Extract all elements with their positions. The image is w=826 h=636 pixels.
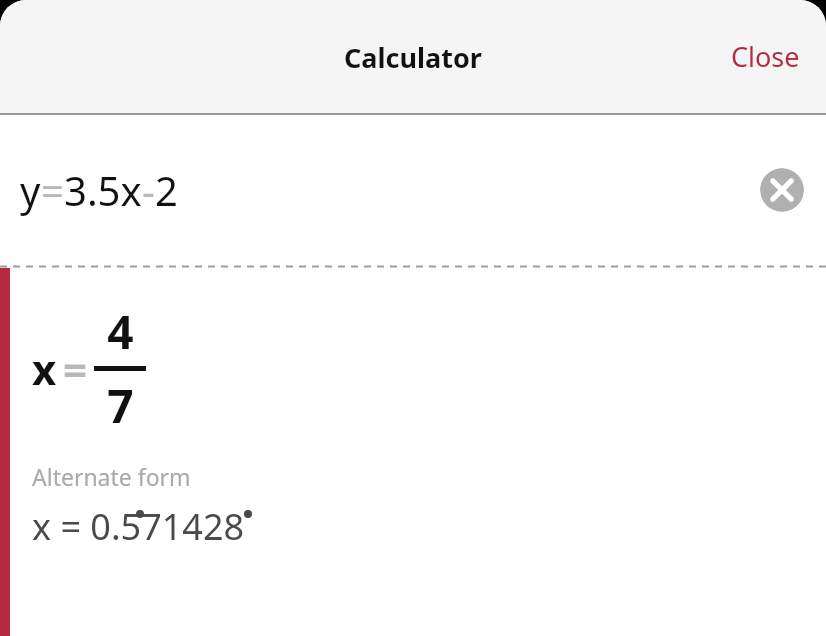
staticText: Alternate form bbox=[32, 461, 191, 492]
staticText: - bbox=[142, 163, 155, 217]
staticText: y bbox=[20, 163, 41, 217]
staticText: Calculator bbox=[344, 39, 482, 76]
button[interactable]: Clear bbox=[760, 168, 804, 212]
staticText: Close bbox=[731, 38, 800, 75]
button[interactable]: x = 0.571428 bbox=[32, 502, 826, 551]
button[interactable]: x bbox=[32, 300, 146, 437]
button[interactable]: Close bbox=[721, 30, 810, 83]
staticText: 3.5x bbox=[64, 163, 142, 217]
button[interactable]: y bbox=[0, 115, 826, 265]
staticText: 2 bbox=[155, 163, 178, 217]
staticText: 7 bbox=[107, 374, 134, 437]
staticText: = bbox=[63, 340, 88, 397]
staticText: 4 bbox=[107, 300, 134, 363]
staticText: x bbox=[32, 340, 57, 397]
staticText: = bbox=[41, 163, 64, 217]
staticText: x = 0.571428 bbox=[32, 502, 245, 551]
